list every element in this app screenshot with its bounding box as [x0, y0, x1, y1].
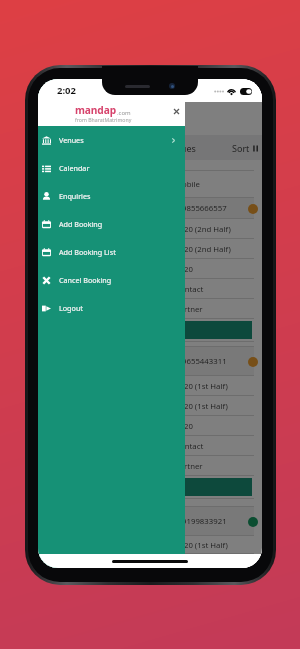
staticText: 9199833921 — [182, 516, 227, 527]
button[interactable]: Mobile Number — [41, 170, 254, 342]
button[interactable]: 9199833921 — [41, 506, 254, 554]
staticText: Contact — [175, 441, 204, 452]
staticText: Venues — [59, 135, 84, 145]
staticText: mandap — [75, 103, 117, 117]
staticText: Enquiries — [59, 191, 91, 201]
staticText: 2020 (1st Half) — [175, 540, 228, 551]
staticText: 2:02 — [57, 84, 76, 97]
button[interactable]: Close navigation drawer — [170, 105, 182, 117]
staticText: Add Booking — [59, 219, 103, 229]
staticText: Name of Contact — [46, 284, 108, 295]
button[interactable]: Book Venues — [43, 478, 252, 496]
staticText: 2020 — [175, 264, 193, 275]
staticText: 9655443311 — [182, 356, 227, 367]
button[interactable]: Logout — [38, 294, 185, 322]
button[interactable]: Sort — [229, 140, 262, 156]
staticText: Partner — [175, 461, 203, 472]
staticText: Booking From — [46, 224, 98, 235]
staticText: Add Booking List — [59, 247, 116, 257]
button[interactable]: 9655443311 — [41, 346, 254, 499]
staticText: 2020 (2nd Half) — [175, 244, 231, 255]
staticText: Venues — [165, 142, 196, 154]
staticText: from BharatMatrimony — [75, 116, 132, 123]
staticText: 2020 (2nd Half) — [175, 224, 231, 235]
staticText: Channel Partner — [46, 304, 106, 315]
button[interactable]: Venues — [38, 126, 185, 154]
staticText: Cancel Booking — [59, 275, 112, 285]
staticText: 2020 — [175, 421, 193, 432]
staticText: Contact — [175, 284, 204, 295]
staticText: 2020 (1st Half) — [175, 381, 228, 392]
staticText: 9855666557 — [182, 203, 227, 214]
button[interactable]: Calendar — [38, 154, 185, 182]
staticText: 2020 (1st Half) — [175, 401, 228, 412]
staticText: Booking To — [46, 244, 87, 255]
staticText: Partner — [175, 304, 203, 315]
staticText: Logout — [59, 303, 83, 313]
button[interactable]: Add Booking List — [38, 238, 185, 266]
staticText: 2:02 — [57, 84, 76, 97]
staticText: Sort — [232, 142, 250, 154]
staticText: Calendar — [59, 163, 90, 173]
button[interactable]: Book Venues — [43, 321, 252, 339]
button[interactable]: Cancel Booking — [38, 266, 185, 294]
button[interactable]: Add Booking — [38, 210, 185, 238]
staticText: .com — [117, 109, 131, 117]
staticText: Mobile — [175, 179, 201, 190]
button[interactable]: Enquiries — [38, 182, 185, 210]
